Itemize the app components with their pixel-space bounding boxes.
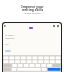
staticText: Hi Anna, I [5,34,15,37]
staticText: hope you [5,37,15,40]
button[interactable]: Suggestion [5,50,11,52]
button[interactable]: Keyboard [3,55,61,72]
staticText: Tap [5,43,9,46]
staticText: writing assistant [24,12,41,15]
staticText: Improve your writing skills [21,4,44,12]
button[interactable]: Back [4,25,6,27]
